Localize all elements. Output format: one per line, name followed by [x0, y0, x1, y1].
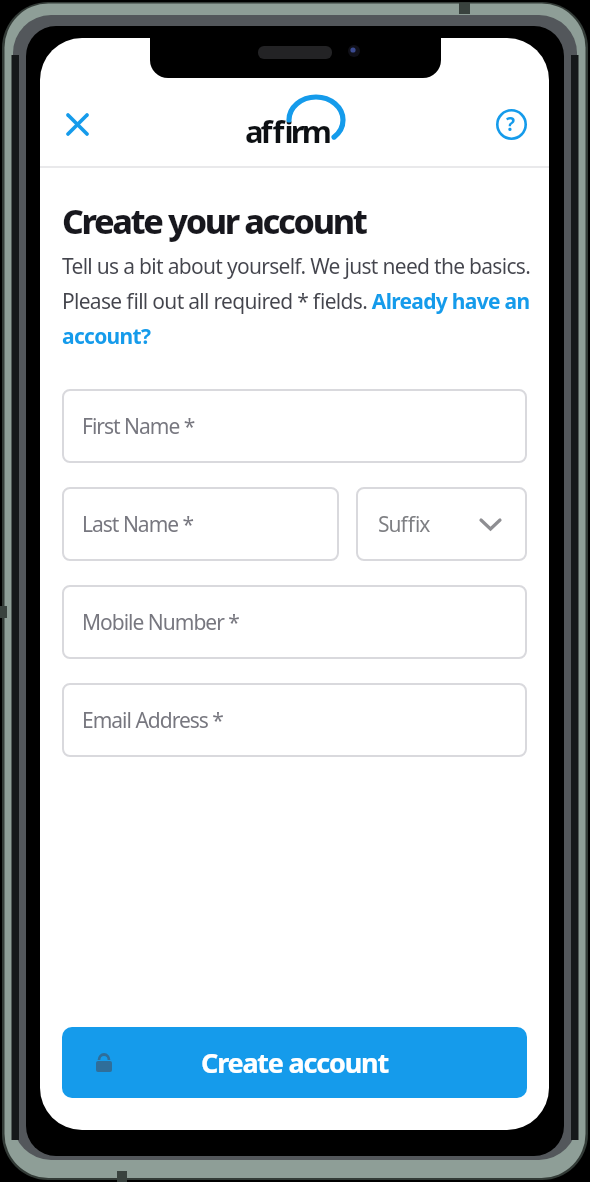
staticText: First Name * [82, 412, 195, 441]
button[interactable]: Last Name * [62, 487, 339, 561]
staticText: affirm [245, 110, 329, 152]
button[interactable]: ? [489, 102, 533, 146]
staticText: Tell us a bit about yourself. We just ne… [62, 252, 531, 351]
button[interactable] [55, 102, 99, 146]
button[interactable]: Suffix [356, 487, 527, 561]
button[interactable]: Email Address * [62, 683, 527, 757]
staticText: Last Name * [82, 510, 194, 539]
button[interactable]: Mobile Number * [62, 585, 527, 659]
button[interactable]: First Name * [62, 389, 527, 463]
staticText: Email Address * [82, 706, 223, 735]
button[interactable]: Create account [62, 1027, 527, 1098]
staticText: Create your account [62, 198, 366, 244]
staticText: Create account [201, 1044, 388, 1081]
staticText: Mobile Number * [82, 608, 239, 637]
staticText: ? [506, 111, 516, 137]
staticText: Suffix [378, 510, 430, 539]
